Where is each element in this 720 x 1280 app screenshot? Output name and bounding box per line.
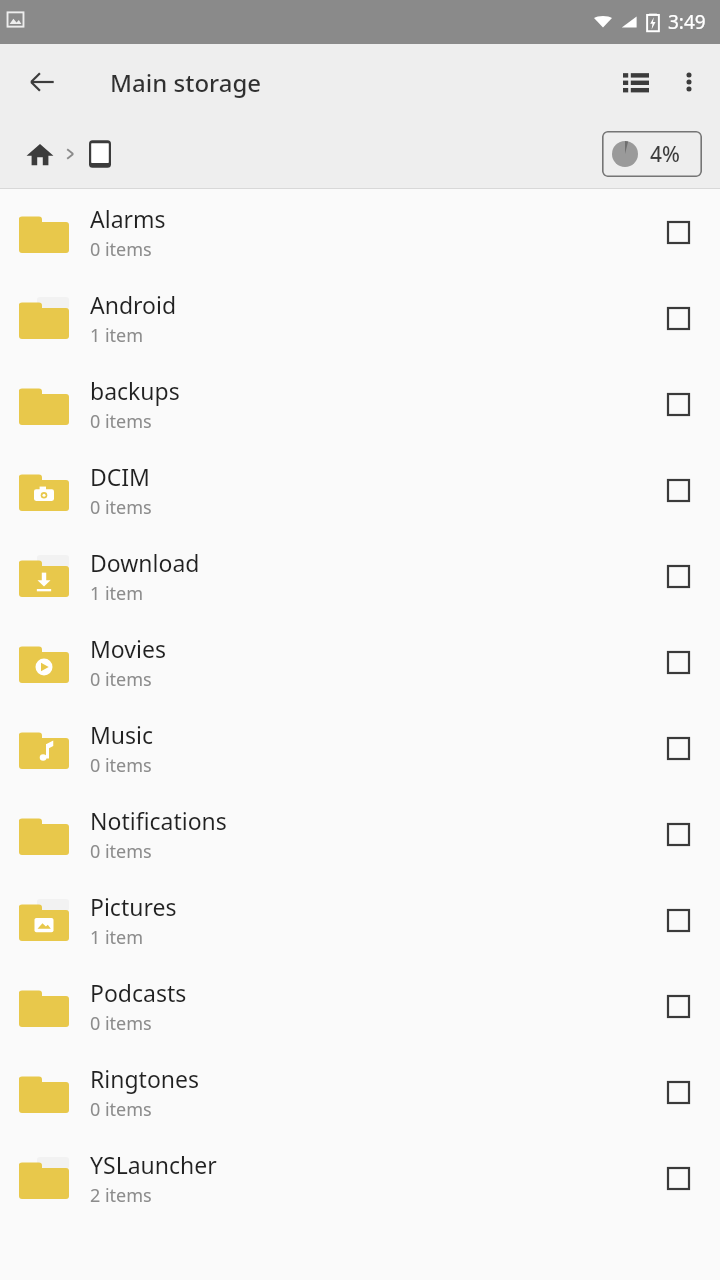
staticText: 0 items: [90, 753, 152, 778]
button[interactable]: Home: [20, 134, 60, 174]
staticText: 1 item: [90, 581, 144, 606]
staticText: 2 items: [90, 1183, 152, 1208]
button[interactable]: Storage used 4 percent: [602, 131, 702, 177]
button[interactable]: Select YSLauncher: [656, 1156, 700, 1200]
button[interactable]: Select Podcasts: [656, 984, 700, 1028]
staticText: Music: [90, 719, 154, 750]
button[interactable]: Select Download: [656, 554, 700, 598]
staticText: DCIM: [90, 461, 150, 492]
staticText: Notifications: [90, 805, 227, 836]
staticText: 1 item: [90, 925, 144, 950]
staticText: 0 items: [90, 667, 152, 692]
button[interactable]: backups: [0, 361, 720, 447]
button[interactable]: Podcasts: [0, 963, 720, 1049]
button[interactable]: Movies: [0, 619, 720, 705]
button[interactable]: Select Notifications: [656, 812, 700, 856]
staticText: YSLauncher: [90, 1149, 217, 1180]
staticText: Main storage: [110, 66, 262, 99]
staticText: 0 items: [90, 1097, 152, 1122]
staticText: 0 items: [90, 839, 152, 864]
staticText: Download: [90, 547, 200, 578]
button[interactable]: Select backups: [656, 382, 700, 426]
staticText: 1 item: [90, 323, 144, 348]
button[interactable]: Back: [14, 54, 70, 110]
button[interactable]: Select Android: [656, 296, 700, 340]
button[interactable]: Select Ringtones: [656, 1070, 700, 1114]
button[interactable]: View mode: [608, 54, 664, 110]
button[interactable]: DCIM: [0, 447, 720, 533]
staticText: Movies: [90, 633, 166, 664]
staticText: Podcasts: [90, 977, 187, 1008]
button[interactable]: Ringtones: [0, 1049, 720, 1135]
button[interactable]: Select DCIM: [656, 468, 700, 512]
button[interactable]: Music: [0, 705, 720, 791]
staticText: Android: [90, 289, 177, 320]
button[interactable]: Pictures: [0, 877, 720, 963]
button[interactable]: Select Movies: [656, 640, 700, 684]
staticText: 0 items: [90, 409, 152, 434]
staticText: 4%: [638, 140, 692, 169]
button[interactable]: Device: [80, 134, 120, 174]
staticText: 0 items: [90, 237, 152, 262]
staticText: 3:49: [668, 9, 706, 35]
staticText: 0 items: [90, 1011, 152, 1036]
button[interactable]: More options: [664, 54, 714, 110]
button[interactable]: Notifications: [0, 791, 720, 877]
staticText: Ringtones: [90, 1063, 200, 1094]
button[interactable]: Select Pictures: [656, 898, 700, 942]
button[interactable]: Alarms: [0, 189, 720, 275]
staticText: Pictures: [90, 891, 177, 922]
button[interactable]: Select Music: [656, 726, 700, 770]
button[interactable]: Select Alarms: [656, 210, 700, 254]
button[interactable]: Android: [0, 275, 720, 361]
button[interactable]: YSLauncher: [0, 1135, 720, 1221]
staticText: Alarms: [90, 203, 166, 234]
staticText: backups: [90, 375, 180, 406]
staticText: 0 items: [90, 495, 152, 520]
button[interactable]: Download: [0, 533, 720, 619]
